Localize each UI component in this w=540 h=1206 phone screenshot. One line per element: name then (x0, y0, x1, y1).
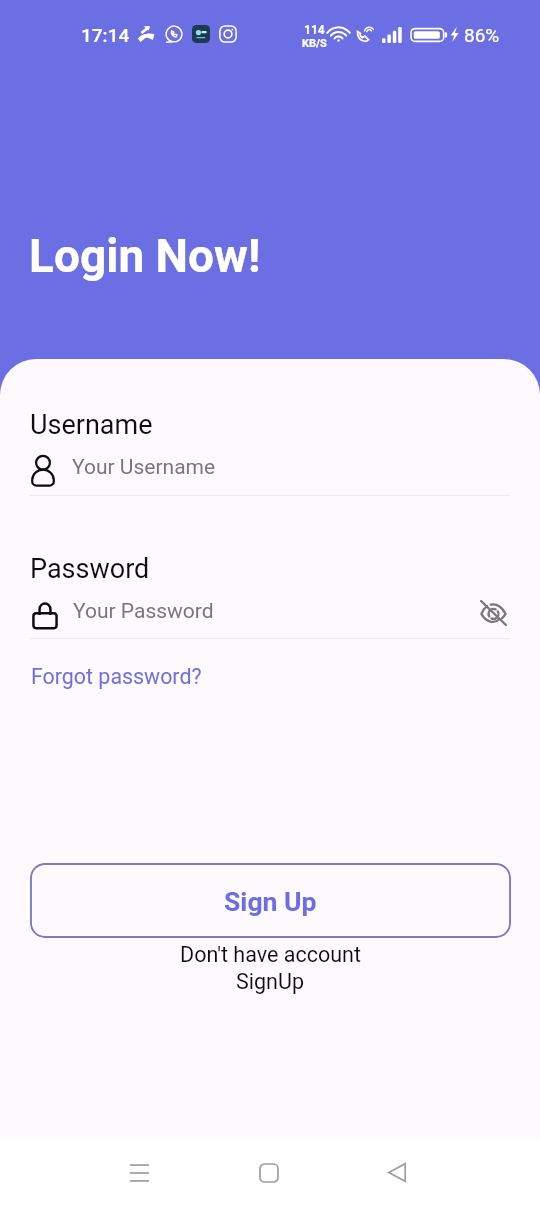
staticText: Password (30, 553, 150, 585)
staticText: SignUp (236, 969, 304, 994)
staticText: Don't have account (180, 942, 361, 967)
button[interactable]: Back (374, 1148, 422, 1196)
button[interactable]: Recent apps (115, 1149, 163, 1197)
staticText: Your Password (73, 599, 214, 624)
staticText: 86% (464, 24, 500, 46)
staticText: KB/S (302, 37, 327, 50)
staticText: Login Now! (29, 229, 261, 283)
staticText: Forgot password? (31, 664, 202, 689)
button[interactable]: SignUp (232, 969, 308, 994)
button[interactable]: Toggle password visibility (475, 595, 511, 631)
staticText: Your Username (72, 455, 216, 480)
button[interactable]: Sign Up (30, 863, 511, 938)
button[interactable]: Home (245, 1149, 293, 1197)
staticText: 114 (304, 23, 325, 37)
button[interactable]: Forgot password? (25, 660, 208, 693)
staticText: Sign Up (224, 886, 317, 917)
staticText: Username (30, 409, 153, 441)
staticText: 17:14 (81, 24, 130, 46)
